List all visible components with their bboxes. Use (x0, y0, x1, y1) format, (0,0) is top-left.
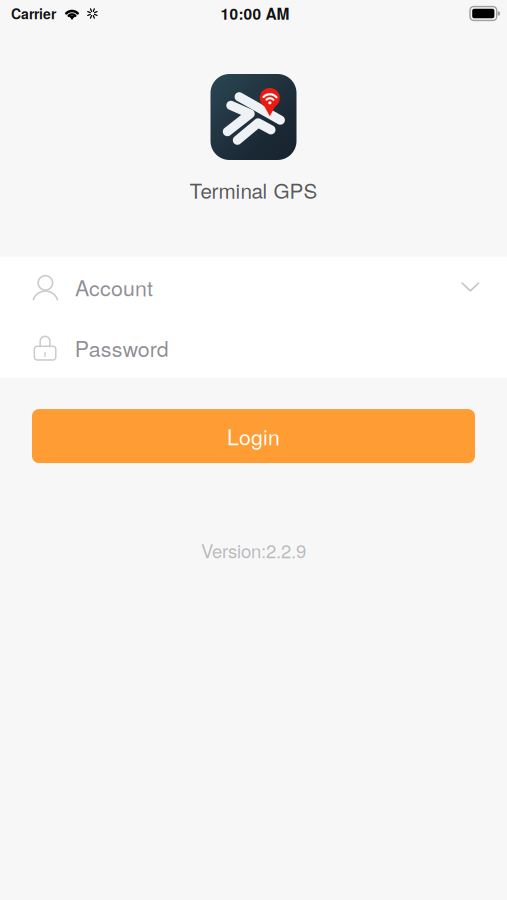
staticText: Login (227, 421, 280, 451)
staticText: 10:00 AM (220, 2, 289, 24)
button[interactable]: Login (32, 409, 475, 463)
staticText: Carrier (11, 3, 56, 23)
staticText: Terminal GPS (189, 175, 317, 205)
button[interactable]: Account (0, 257, 507, 317)
button[interactable]: Password (0, 317, 507, 378)
staticText: Account (75, 272, 153, 302)
staticText: Version:2.2.9 (201, 537, 306, 564)
staticText: Password (75, 332, 169, 363)
